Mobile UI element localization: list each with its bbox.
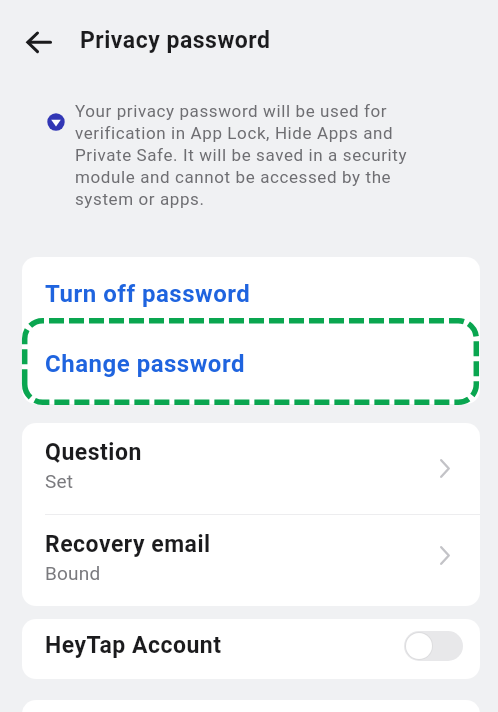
staticText: HeyTap Account (45, 632, 222, 659)
staticText: Change password (45, 350, 245, 378)
button[interactable]: Recovery email (22, 515, 480, 606)
staticText: Set (45, 470, 74, 492)
staticText: Question (45, 439, 142, 466)
button[interactable]: Change password (22, 330, 480, 404)
staticText: Bound (45, 562, 101, 584)
button[interactable] (16, 26, 58, 60)
button[interactable]: Turn off password (22, 257, 480, 330)
staticText: Privacy password (80, 27, 271, 54)
staticText: Recovery email (45, 531, 211, 558)
button[interactable]: HeyTap Account (22, 619, 480, 679)
staticText: Your privacy password will be used for v… (75, 101, 408, 209)
button[interactable]: Question (22, 423, 480, 514)
staticText: Turn off password (45, 280, 251, 308)
